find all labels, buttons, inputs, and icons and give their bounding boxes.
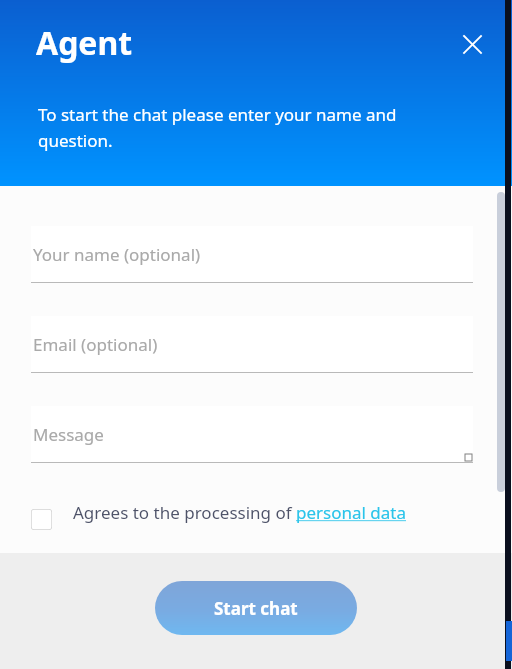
staticText: To start the chat please enter your name… [38, 103, 397, 152]
button[interactable]: Message [31, 406, 473, 463]
button[interactable]: Agrees to the processing of personal dat… [31, 501, 473, 524]
staticText: Agent [36, 21, 133, 65]
staticText: Message [33, 423, 104, 446]
button[interactable]: Your name (optional) [31, 226, 473, 283]
button[interactable]: Start chat [155, 581, 357, 635]
staticText: Email (optional) [33, 333, 158, 356]
staticText: Start chat [214, 597, 298, 620]
staticText: Agrees to the processing of personal dat… [73, 501, 407, 524]
staticText: Your name (optional) [33, 243, 201, 266]
button[interactable]: Email (optional) [31, 316, 473, 373]
button[interactable]: Close [452, 24, 492, 64]
